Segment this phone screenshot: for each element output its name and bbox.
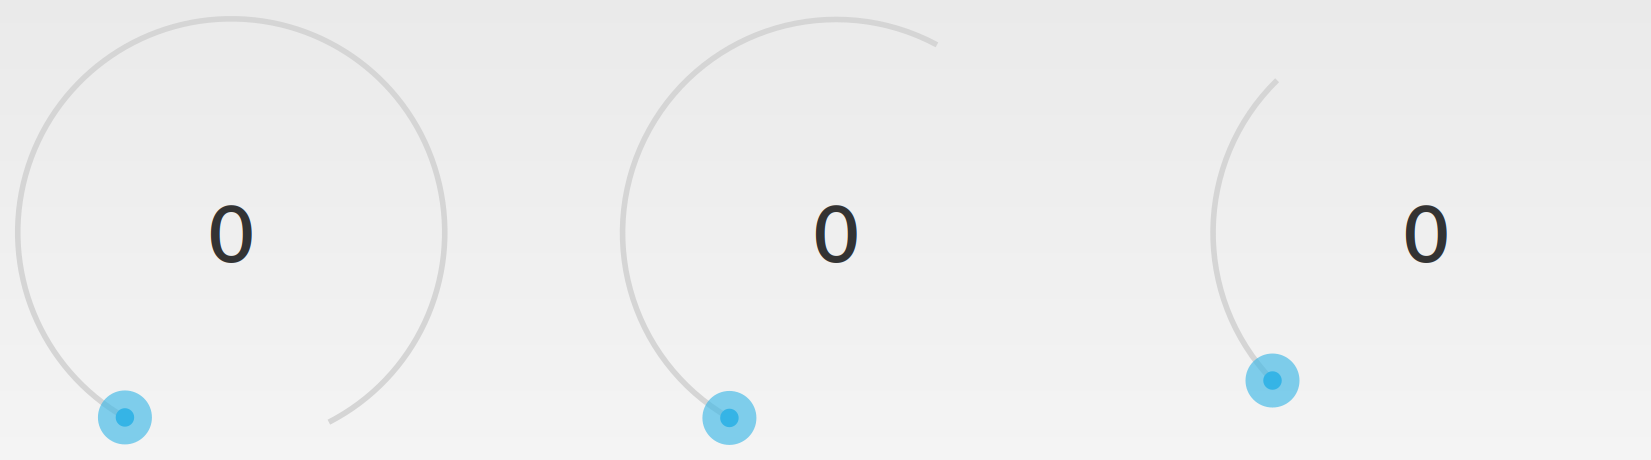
staticText: 0 [812,189,860,279]
button[interactable]: 0 [1186,0,1651,460]
staticText: 0 [1402,189,1450,279]
staticText: 0 [207,189,255,279]
button[interactable]: 0 [0,0,472,460]
button[interactable]: 0 [596,0,1077,460]
